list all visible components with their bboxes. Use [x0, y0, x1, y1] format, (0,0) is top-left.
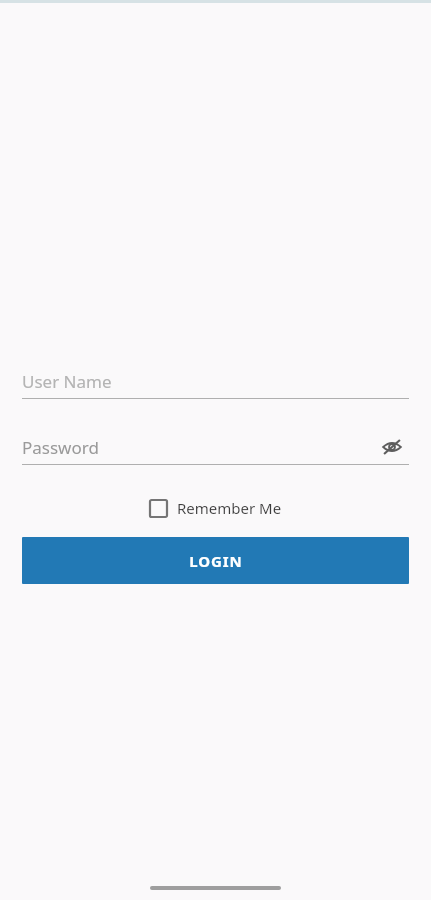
staticText: LOGIN: [189, 551, 243, 571]
button[interactable]: User Name: [22, 364, 409, 398]
button[interactable]: Show password: [375, 430, 409, 464]
button[interactable]: LOGIN: [22, 537, 409, 584]
button[interactable]: Password: [22, 430, 409, 464]
staticText: User Name: [22, 370, 112, 393]
staticText: Password: [22, 436, 99, 459]
staticText: Remember Me: [177, 498, 282, 518]
button[interactable]: Remember Me: [150, 496, 282, 520]
